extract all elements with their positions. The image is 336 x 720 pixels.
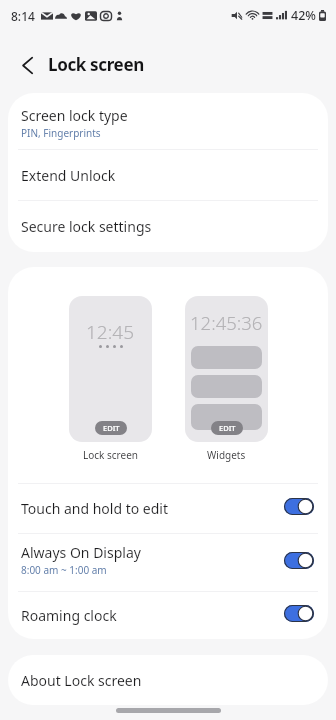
- staticText: EDIT: [103, 423, 120, 433]
- staticText: Lock screen: [48, 53, 144, 76]
- button[interactable]: Extend Unlock: [8, 150, 328, 200]
- button[interactable]: Roaming clock: [8, 592, 328, 639]
- staticText: Roaming clock: [21, 606, 117, 625]
- button[interactable]: Toggle: [284, 552, 314, 569]
- staticText: Extend Unlock: [21, 166, 116, 185]
- button[interactable]: Widgets preview: [185, 296, 268, 442]
- staticText: PIN, Fingerprints: [21, 126, 101, 140]
- staticText: Lock screen: [83, 448, 139, 462]
- staticText: EDIT: [219, 423, 236, 433]
- button[interactable]: EDIT: [211, 421, 243, 435]
- button[interactable]: Back: [10, 47, 46, 83]
- staticText: 12:45: [86, 319, 135, 345]
- button[interactable]: Always On Display: [8, 534, 328, 591]
- button[interactable]: EDIT: [95, 421, 127, 435]
- staticText: Touch and hold to edit: [21, 499, 169, 518]
- staticText: Always On Display: [21, 543, 141, 562]
- button[interactable]: Toggle: [284, 605, 314, 622]
- button[interactable]: Lock screen preview: [69, 296, 152, 442]
- staticText: 42%: [291, 7, 316, 24]
- button[interactable]: Screen lock type: [8, 93, 328, 149]
- staticText: 8:14: [11, 8, 35, 24]
- button[interactable]: About Lock screen: [8, 655, 328, 705]
- button[interactable]: Toggle: [284, 498, 314, 515]
- staticText: Secure lock settings: [21, 217, 152, 236]
- button[interactable]: Secure lock settings: [8, 201, 328, 252]
- button[interactable]: Touch and hold to edit: [8, 484, 328, 533]
- staticText: 12:45:36: [190, 310, 263, 335]
- staticText: About Lock screen: [21, 671, 142, 690]
- staticText: Screen lock type: [21, 106, 128, 125]
- staticText: Widgets: [207, 448, 246, 462]
- staticText: 8:00 am ~ 1:00 am: [21, 563, 107, 577]
